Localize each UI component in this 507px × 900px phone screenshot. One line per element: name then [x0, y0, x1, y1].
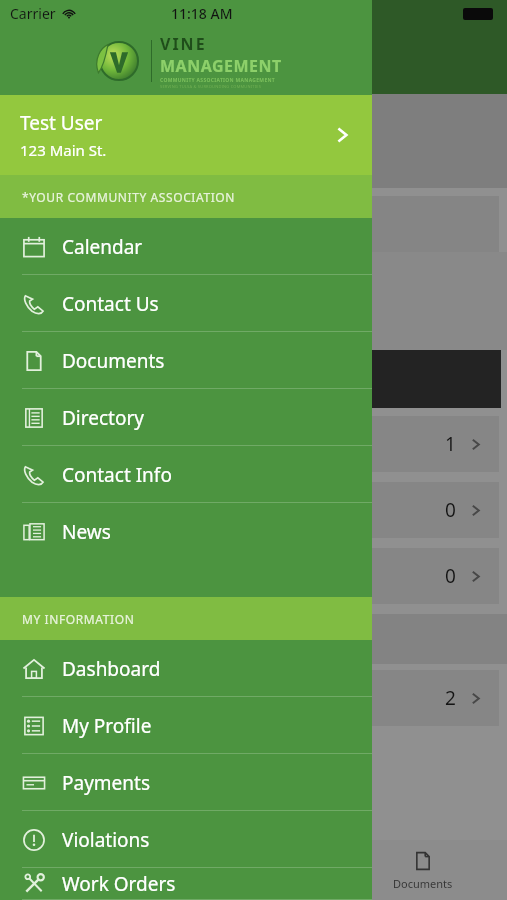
button[interactable]: News — [169, 840, 338, 900]
staticText: Home — [69, 876, 101, 891]
button[interactable]: My Profile — [0, 697, 372, 754]
staticText: Carrier — [10, 4, 56, 23]
staticText: SERVING TULSA & SURROUNDING COMMUNITIES — [160, 84, 262, 89]
button[interactable]: Home — [0, 840, 169, 900]
staticText: Test User — [20, 110, 103, 136]
staticText: Directory — [62, 405, 144, 431]
button[interactable]: Account Info — [183, 209, 325, 240]
button[interactable]: Documents — [338, 840, 507, 900]
button[interactable]: 0 — [8, 482, 499, 538]
staticText: Contact Us — [62, 291, 159, 317]
staticText: 1 — [445, 431, 456, 457]
button[interactable]: 2 — [8, 670, 499, 726]
staticText: MANAGEMENT — [160, 55, 282, 77]
staticText: Documents — [393, 876, 453, 891]
staticText: My Profile — [62, 713, 152, 739]
staticText: Calendar — [62, 234, 143, 260]
staticText: Documents — [62, 348, 165, 374]
staticText: 11:18 AM — [171, 4, 233, 23]
staticText: Violations — [62, 827, 150, 853]
button[interactable]: Work Orders — [0, 868, 372, 900]
button[interactable]: 0 — [8, 548, 499, 604]
staticText: COMMUNITY ASSOCIATION MANAGEMENT — [160, 77, 276, 84]
staticText: 0 — [445, 563, 456, 589]
button[interactable]: News — [0, 503, 372, 560]
staticText: Dashboard — [62, 656, 161, 682]
button[interactable]: Calendar — [0, 218, 372, 275]
staticText: Payments — [62, 770, 151, 796]
button[interactable]: Test User — [0, 95, 372, 175]
staticText: Work Orders — [62, 871, 176, 897]
staticText: MY INFORMATION — [22, 611, 135, 627]
staticText: 2 — [445, 685, 456, 711]
button[interactable]: Dashboard — [0, 640, 372, 697]
staticText: 123 Main St. — [20, 140, 107, 160]
button[interactable]: Directory — [0, 389, 372, 446]
staticText: *YOUR COMMUNITY ASSOCIATION — [22, 189, 236, 205]
staticText: Account Info — [201, 215, 285, 234]
button[interactable]: Payments — [0, 754, 372, 811]
button[interactable]: Violations — [0, 811, 372, 868]
button[interactable]: 1 — [8, 416, 499, 472]
staticText: 0 — [445, 497, 456, 523]
staticText: VINE — [160, 33, 207, 55]
button[interactable]: Contact Info — [0, 446, 372, 503]
staticText: Contact Info — [62, 462, 172, 488]
button[interactable]: Contact Us — [0, 275, 372, 332]
staticText: News — [62, 519, 111, 545]
button[interactable]: Documents — [0, 332, 372, 389]
